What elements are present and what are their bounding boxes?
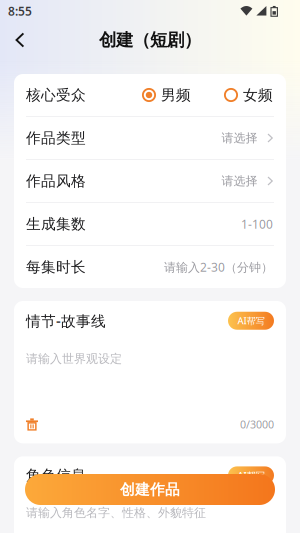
staticText: 0/3000 [240, 417, 274, 431]
staticText: 创建作品 [120, 480, 180, 498]
staticText: 请输入世界观设定 [26, 351, 122, 366]
staticText: 生成集数 [26, 215, 86, 233]
staticText: 请输入角色名字、性格、外貌特征 [26, 505, 206, 520]
button[interactable]: 创建作品 [25, 474, 275, 505]
staticText: 作品风格 [26, 172, 86, 190]
staticText: 情节-故事线 [26, 311, 106, 330]
button[interactable]: Back [6, 25, 34, 55]
button[interactable]: 每集时长 [14, 246, 286, 288]
staticText: AI帮写 [237, 469, 264, 482]
button[interactable]: 作品风格 [14, 160, 286, 202]
button[interactable]: AI帮写 [228, 312, 274, 330]
staticText: 请输入2-30（分钟） [164, 259, 273, 275]
button[interactable]: AI帮写 [228, 466, 274, 484]
staticText: AI帮写 [237, 314, 264, 327]
staticText: 请选择 [221, 174, 257, 188]
staticText: 角色信息 [26, 466, 86, 484]
staticText: 1-100 [241, 216, 273, 232]
button[interactable]: 生成集数 [14, 203, 286, 245]
button[interactable]: 作品类型 [14, 117, 286, 159]
staticText: 8:55 [8, 3, 32, 19]
button[interactable]: 核心受众 [14, 74, 286, 116]
staticText: 作品类型 [26, 129, 86, 147]
staticText: 男频 [161, 86, 191, 104]
staticText: 创建（短剧） [99, 29, 201, 51]
staticText: 请选择 [221, 131, 257, 145]
staticText: 核心受众 [26, 86, 86, 104]
staticText: 女频 [243, 86, 273, 104]
staticText: 每集时长 [26, 258, 86, 276]
button[interactable]: Delete [26, 418, 38, 431]
